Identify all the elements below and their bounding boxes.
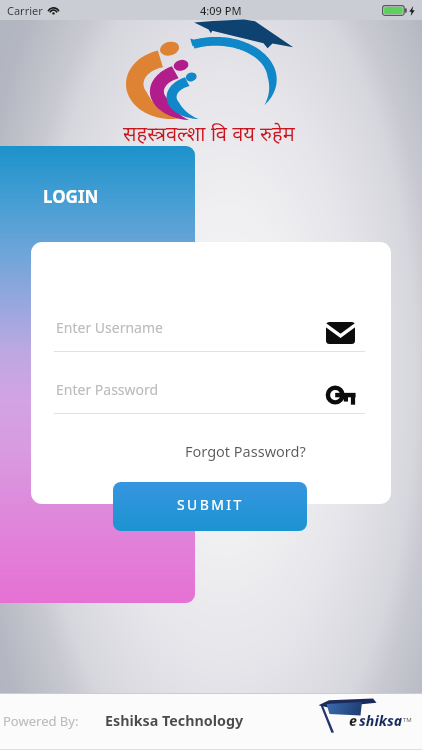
button[interactable]: SUBMIT xyxy=(113,482,307,531)
staticText: shiksa xyxy=(359,711,403,730)
staticText: Carrier xyxy=(7,3,43,18)
staticText: Enter Password xyxy=(56,380,159,399)
staticText: 4:09 PM xyxy=(200,3,242,18)
staticText: सहस्त्रवल्शा वि वय रुहेम xyxy=(123,120,295,147)
staticText: Powered By: xyxy=(3,712,79,730)
staticText: LOGIN xyxy=(43,185,99,208)
staticText: e xyxy=(349,711,357,730)
button[interactable]: Username xyxy=(326,322,355,344)
button[interactable]: Forgot Password? xyxy=(179,437,312,465)
staticText: TM xyxy=(403,716,412,724)
staticText: Forgot Password? xyxy=(185,441,306,461)
button[interactable]: Password xyxy=(325,385,356,409)
staticText: Enter Username xyxy=(56,318,163,337)
staticText: Eshiksa Technology xyxy=(105,711,244,730)
staticText: SUBMIT xyxy=(177,495,244,514)
